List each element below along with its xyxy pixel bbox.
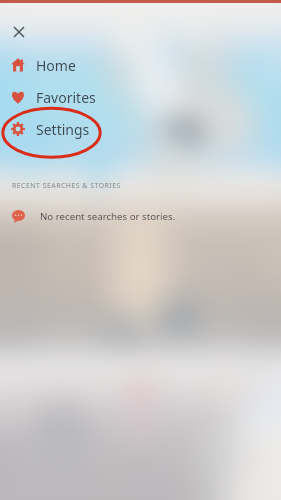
- staticText: No recent searches or stories.: [40, 210, 176, 223]
- button[interactable]: Home: [0, 49, 281, 81]
- button[interactable]: Settings: [0, 113, 281, 145]
- staticText: RECENT SEARCHES & STORIES: [12, 181, 121, 190]
- staticText: Home: [36, 56, 76, 75]
- staticText: Favorites: [36, 88, 96, 107]
- staticText: Settings: [36, 120, 90, 139]
- button[interactable]: Close: [8, 21, 29, 42]
- button[interactable]: Favorites: [0, 81, 281, 113]
- button[interactable]: No recent searches or stories.: [0, 204, 281, 228]
